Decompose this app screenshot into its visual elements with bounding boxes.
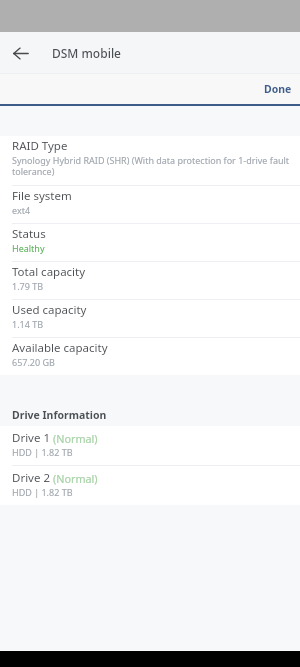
button[interactable]: Total capacity: [0, 262, 300, 299]
staticText: Synology Hybrid RAID (SHR) (With data pr…: [12, 154, 290, 178]
button[interactable]: Done: [256, 76, 300, 102]
staticText: (Normal): [53, 431, 98, 446]
button[interactable]: RAID Type: [0, 136, 300, 185]
staticText: (Normal): [53, 471, 98, 486]
staticText: Done: [264, 82, 292, 96]
staticText: Drive 2: [12, 470, 51, 486]
staticText: Status: [12, 226, 46, 242]
button[interactable]: Back: [0, 32, 41, 73]
staticText: HDD | 1.82 TB: [12, 486, 73, 498]
button[interactable]: Drive 1: [0, 426, 300, 465]
staticText: Available capacity: [12, 340, 108, 356]
staticText: ext4: [12, 204, 31, 216]
staticText: 657.20 GB: [12, 356, 55, 368]
staticText: Total capacity: [12, 264, 86, 280]
staticText: Drive Information: [12, 408, 107, 422]
button[interactable]: Status: [0, 224, 300, 261]
button[interactable]: Used capacity: [0, 300, 300, 337]
staticText: RAID Type: [12, 138, 68, 154]
button[interactable]: Drive 2: [0, 466, 300, 505]
staticText: Healthy: [12, 242, 45, 254]
staticText: DSM mobile: [52, 45, 122, 61]
staticText: 1.14 TB: [12, 318, 44, 330]
staticText: 1.79 TB: [12, 280, 44, 292]
button[interactable]: File system: [0, 186, 300, 223]
staticText: Drive 1: [12, 430, 51, 446]
button[interactable]: Available capacity: [0, 338, 300, 375]
staticText: File system: [12, 188, 72, 204]
staticText: Used capacity: [12, 302, 87, 318]
staticText: HDD | 1.82 TB: [12, 446, 73, 458]
